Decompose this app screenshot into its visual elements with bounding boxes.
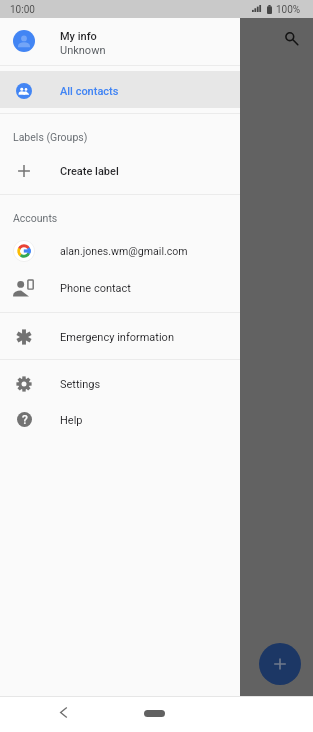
staticText: 10:00 <box>10 4 35 16</box>
staticText: Unknown <box>60 44 106 57</box>
button[interactable]: alan.jones.wm@gmail.com <box>0 233 240 269</box>
button[interactable]: Search contacts <box>278 25 302 49</box>
button[interactable]: Create new contact <box>259 643 301 685</box>
staticText: Help <box>60 414 83 427</box>
button[interactable]: Home <box>144 710 165 717</box>
staticText: Settings <box>60 378 101 391</box>
staticText: Labels (Groups) <box>13 131 88 143</box>
staticText: Create label <box>60 165 119 178</box>
staticText: Emergency information <box>60 331 174 344</box>
staticText: My info <box>60 30 97 43</box>
button[interactable]: Settings <box>0 366 240 402</box>
button[interactable]: Create label <box>0 153 240 189</box>
button[interactable]: Back <box>54 703 72 721</box>
staticText: All contacts <box>60 85 119 98</box>
staticText: Phone contact <box>60 282 131 295</box>
staticText: Accounts <box>13 212 58 224</box>
staticText: alan.jones.wm@gmail.com <box>60 245 188 257</box>
button[interactable]: Emergency information <box>0 319 240 355</box>
button[interactable]: My info <box>0 18 240 65</box>
staticText: 100% <box>276 4 301 16</box>
button[interactable]: All contacts <box>0 71 240 108</box>
button[interactable]: Phone contact <box>0 270 240 306</box>
button[interactable]: ? <box>0 402 240 438</box>
staticText: ? <box>22 413 28 427</box>
